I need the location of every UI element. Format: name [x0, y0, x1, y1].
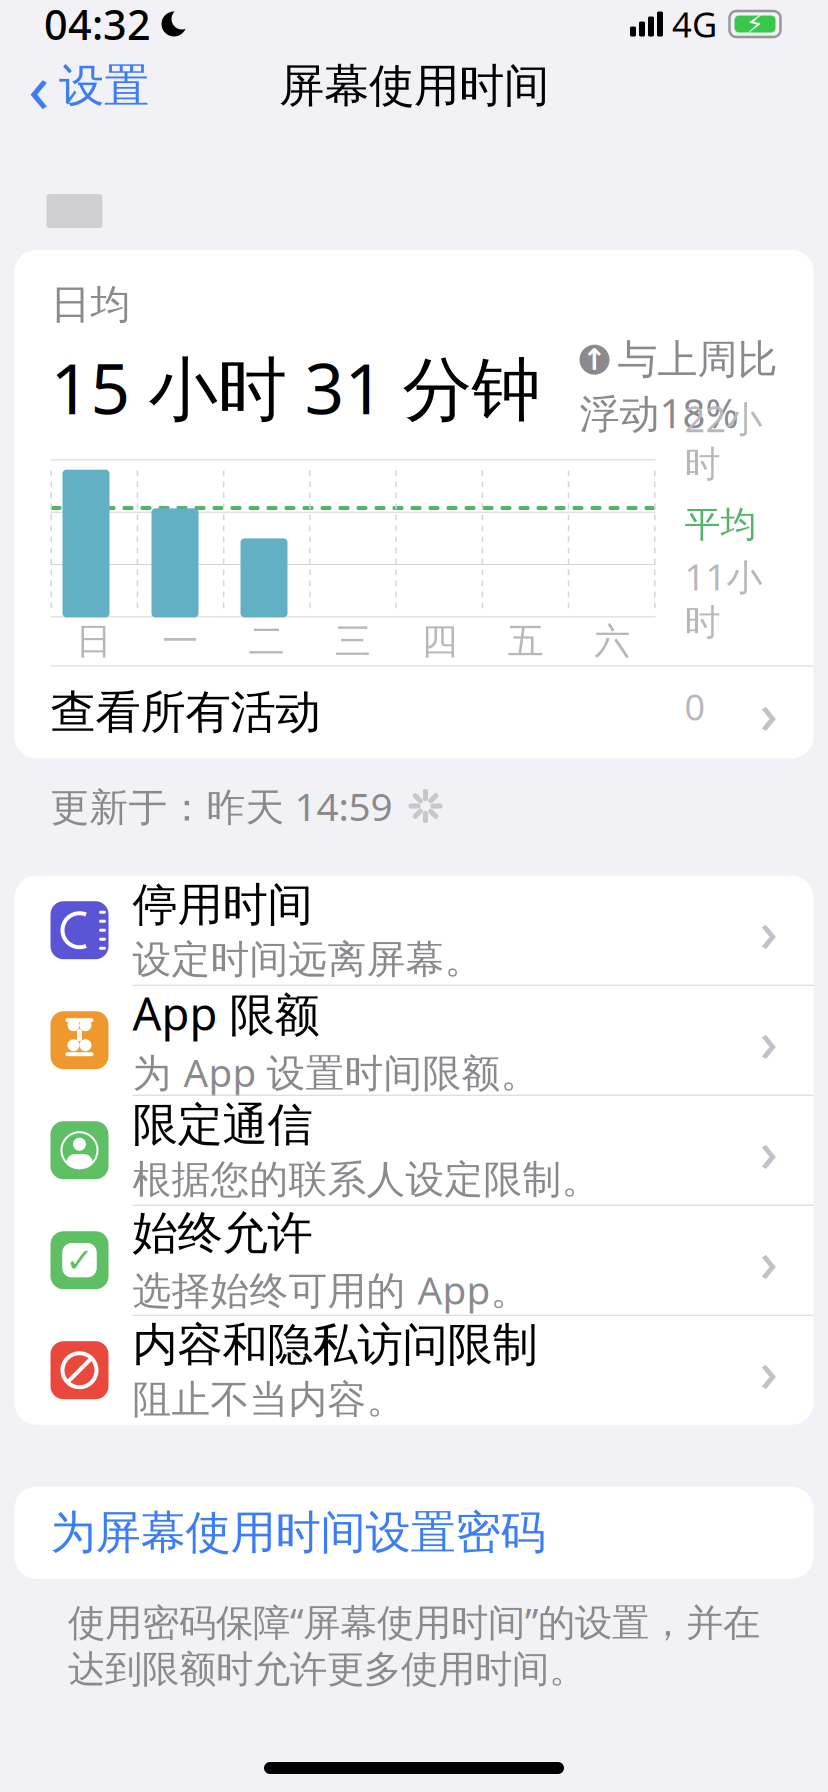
button[interactable]: 内容和隐私访问限制: [14, 1316, 813, 1425]
staticText: ›: [759, 1003, 777, 1077]
staticText: 更新于：昨天 14:59: [50, 780, 392, 832]
staticText: 平均: [684, 502, 756, 547]
staticText: 设定时间远离屏幕。: [132, 936, 483, 983]
staticText: 04:32: [44, 0, 151, 51]
staticText: 限定通信: [132, 1097, 312, 1153]
staticText: 三: [335, 619, 371, 663]
button[interactable]: 查看所有活动: [14, 666, 813, 758]
staticText: 查看所有活动: [50, 684, 320, 740]
staticText: 内容和隐私访问限制: [132, 1317, 537, 1373]
staticText: 4G: [672, 1, 717, 47]
staticText: 日均: [50, 280, 130, 329]
staticText: 11小时: [684, 553, 762, 645]
staticText: 为屏幕使用时间设置密码: [50, 1505, 545, 1561]
staticText: 15 小时 31 分钟: [50, 341, 540, 433]
staticText: 五: [508, 619, 544, 663]
staticText: ›: [759, 1333, 777, 1407]
staticText: 停用时间: [132, 877, 312, 933]
staticText: App 限额: [132, 983, 319, 1043]
staticText: 使用密码保障“屏幕使用时间”的设置，并在达到限额时允许更多使用时间。: [68, 1597, 760, 1692]
staticText: 四: [421, 619, 457, 663]
staticText: 设置: [59, 58, 149, 114]
staticText: 一: [162, 619, 198, 663]
button[interactable]: 为屏幕使用时间设置密码: [14, 1487, 813, 1579]
staticText: 根据您的联系人设定限制。: [132, 1156, 600, 1203]
staticText: ›: [759, 1113, 777, 1187]
staticText: ✓: [65, 1241, 93, 1279]
staticText: 日: [76, 619, 112, 663]
staticText: ↑: [582, 343, 607, 376]
button[interactable]: App 限额: [14, 986, 813, 1096]
staticText: ⚡︎: [745, 9, 764, 39]
staticText: ›: [759, 1223, 777, 1297]
staticText: ‹: [28, 40, 49, 132]
staticText: 22小时: [684, 394, 762, 486]
staticText: 选择始终可用的 App。: [132, 1264, 529, 1315]
staticText: 为 App 设置时间限额。: [132, 1046, 539, 1098]
staticText: 阻止不当内容。: [132, 1376, 405, 1423]
staticText: 浮动18%: [579, 386, 738, 439]
staticText: 始终允许: [132, 1205, 312, 1261]
staticText: 二: [249, 619, 285, 663]
staticText: ›: [759, 675, 777, 750]
staticText: 六: [594, 619, 630, 663]
button[interactable]: ✓: [14, 1206, 813, 1316]
staticText: 屏幕使用时间: [279, 58, 549, 114]
staticText: 与上周比: [617, 335, 777, 384]
button[interactable]: 停用时间: [14, 876, 813, 986]
button[interactable]: 限定通信: [14, 1096, 813, 1206]
staticText: ›: [759, 893, 777, 967]
button[interactable]: ‹: [0, 34, 149, 138]
staticText: 0: [684, 683, 705, 730]
